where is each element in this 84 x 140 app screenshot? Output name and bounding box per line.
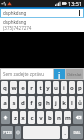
- staticText: x: [21, 114, 25, 122]
- button[interactable]: ?123: [1, 126, 13, 139]
- staticText: t: [39, 84, 42, 92]
- staticText: n: [57, 114, 61, 122]
- button[interactable]: y: [45, 81, 51, 94]
- staticText: v: [39, 114, 43, 122]
- staticText: .: [64, 129, 66, 137]
- button[interactable]: r: [28, 81, 35, 94]
- staticText: b: [48, 114, 52, 122]
- button[interactable]: e: [19, 81, 26, 94]
- staticText: g: [38, 99, 42, 107]
- staticText: i: [63, 84, 65, 92]
- staticText: e: [21, 84, 25, 92]
- button[interactable]: q: [1, 81, 8, 94]
- button[interactable]: s: [10, 96, 17, 109]
- button[interactable]: m: [64, 111, 71, 124]
- staticText: dsphkdsng: [3, 10, 27, 16]
- button[interactable]: l: [69, 96, 75, 109]
- staticText: a: [3, 99, 7, 107]
- button[interactable]: Odeslat: [66, 69, 83, 79]
- staticText: k: [62, 99, 66, 107]
- staticText: u: [54, 84, 58, 92]
- staticText: q: [3, 84, 7, 92]
- staticText: s: [12, 99, 16, 107]
- staticText: y: [46, 84, 50, 92]
- button[interactable]: h: [45, 96, 51, 109]
- staticText: (375)7427274: [3, 25, 32, 31]
- button[interactable]: f: [28, 96, 35, 109]
- button[interactable]: Input settings: [15, 126, 21, 139]
- button[interactable]: u: [53, 81, 59, 94]
- staticText: c: [30, 114, 34, 122]
- button[interactable]: Info: [54, 69, 65, 79]
- button[interactable]: [23, 126, 60, 139]
- button[interactable]: p: [77, 81, 83, 94]
- button[interactable]: dsphkdsng: [1, 9, 83, 17]
- button[interactable]: z: [12, 111, 18, 124]
- staticText: dsphkdsng: [3, 19, 27, 25]
- staticText: d: [21, 99, 25, 107]
- staticText: m: [65, 114, 71, 122]
- staticText: z: [14, 114, 17, 122]
- button[interactable]: j: [53, 96, 59, 109]
- button[interactable]: o: [69, 81, 75, 94]
- staticText: ů: [78, 99, 82, 107]
- button[interactable]: a: [1, 96, 8, 109]
- button[interactable]: Sem zadejte zprávu: [1, 69, 53, 79]
- button[interactable]: c: [28, 111, 35, 124]
- button[interactable]: dsphkdsng: [0, 17, 84, 32]
- button[interactable]: k: [61, 96, 67, 109]
- button[interactable]: d: [19, 96, 26, 109]
- button[interactable]: Shift: [1, 111, 10, 124]
- button[interactable]: n: [55, 111, 62, 124]
- staticText: f: [30, 99, 33, 107]
- button[interactable]: g: [37, 96, 43, 109]
- staticText: ?123: [3, 130, 12, 135]
- button[interactable]: ů: [77, 96, 83, 109]
- staticText: h: [46, 99, 50, 107]
- staticText: j: [55, 99, 57, 107]
- staticText: i: [58, 69, 61, 79]
- staticText: o: [70, 84, 74, 92]
- button[interactable]: x: [20, 111, 26, 124]
- button[interactable]: w: [10, 81, 17, 94]
- staticText: 13:51: [68, 0, 83, 7]
- staticText: Sem zadejte zprávu: [3, 71, 45, 77]
- button[interactable]: t: [37, 81, 43, 94]
- button[interactable]: v: [37, 111, 44, 124]
- staticText: r: [30, 84, 33, 92]
- staticText: Odeslat: [67, 72, 82, 77]
- button[interactable]: b: [46, 111, 53, 124]
- button[interactable]: .: [62, 126, 68, 139]
- staticText: DAL: [73, 130, 81, 135]
- button[interactable]: Backspace: [73, 111, 83, 124]
- staticText: p: [78, 84, 82, 92]
- staticText: l: [71, 99, 73, 107]
- staticText: w: [11, 84, 17, 92]
- button[interactable]: i: [61, 81, 67, 94]
- button[interactable]: DAL: [70, 126, 83, 139]
